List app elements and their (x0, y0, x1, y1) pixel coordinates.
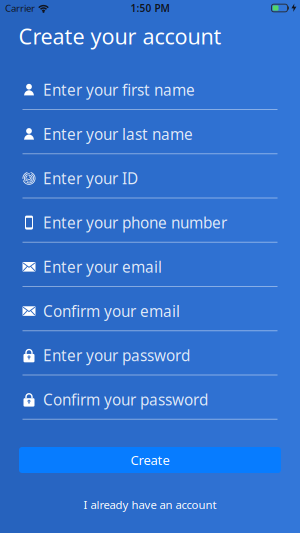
staticText: Carrier (5, 2, 35, 14)
staticText: Create your account (18, 22, 221, 50)
staticText: Enter your password (43, 345, 190, 365)
staticText: Enter your email (43, 257, 162, 277)
button[interactable]: Enter your first name (0, 66, 300, 110)
button[interactable]: Create (19, 447, 281, 473)
button[interactable]: Confirm your email (0, 287, 300, 331)
button[interactable]: Enter your email (0, 243, 300, 287)
staticText: Enter your phone number (43, 212, 227, 233)
staticText: 1:50 PM (130, 1, 169, 15)
staticText: Enter your last name (43, 124, 193, 144)
button[interactable]: Confirm your password (0, 375, 300, 420)
staticText: Enter your first name (43, 80, 195, 100)
staticText: Confirm your password (43, 389, 208, 410)
button[interactable]: Enter your ID (0, 154, 300, 198)
button[interactable]: I already have an account (83, 497, 216, 512)
staticText: Confirm your email (43, 301, 180, 321)
button[interactable]: Enter your phone number (0, 198, 300, 243)
staticText: Enter your ID (43, 168, 138, 188)
button[interactable]: Enter your last name (0, 110, 300, 154)
staticText: I already have an account (83, 497, 216, 512)
staticText: Create (130, 451, 169, 469)
button[interactable]: Enter your password (0, 331, 300, 375)
